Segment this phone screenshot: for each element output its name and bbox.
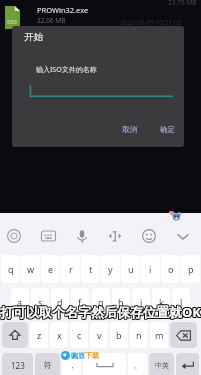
button[interactable]: 确定 — [153, 121, 182, 138]
button[interactable]: i — [141, 255, 160, 283]
button[interactable]: Keyboard layout — [37, 225, 59, 247]
staticText: 确定 — [160, 125, 175, 134]
staticText: exe — [7, 17, 18, 26]
staticText: x — [57, 329, 62, 341]
button[interactable]: p — [181, 255, 200, 283]
button[interactable]: o — [161, 255, 180, 283]
staticText: 符 — [44, 360, 52, 370]
button[interactable]: s — [31, 288, 49, 316]
button[interactable]: ， — [62, 353, 81, 375]
staticText: y — [108, 263, 113, 275]
button[interactable]: m — [150, 322, 168, 348]
staticText: l — [180, 296, 183, 308]
button[interactable]: v — [90, 322, 108, 348]
button[interactable]: k — [152, 288, 170, 316]
staticText: n — [136, 329, 142, 341]
staticText: v — [97, 329, 102, 341]
staticText: u — [128, 263, 134, 275]
staticText: 打可以取个名字然后保存位置就OK了呢 — [1, 302, 201, 320]
button[interactable]: f — [71, 288, 89, 316]
staticText: 中英 — [155, 361, 169, 370]
button[interactable]: Hide keyboard — [172, 225, 194, 247]
staticText: i — [149, 263, 152, 275]
button[interactable]: Move cursor — [104, 225, 126, 247]
button[interactable]: 取消 — [115, 121, 144, 138]
button[interactable]: z — [30, 322, 48, 348]
button[interactable]: e — [41, 255, 60, 283]
staticText: 打可以取个名字然后保存位置就OK了呢 — [0, 303, 201, 321]
staticText: 22.06 MB — [37, 16, 66, 25]
button[interactable]: a — [11, 288, 29, 316]
staticText: 下载 — [85, 351, 99, 360]
button[interactable]: j — [132, 288, 150, 316]
staticText: 打可以取个名字然后保存位置就OK了呢 — [1, 303, 201, 321]
staticText: j — [140, 296, 143, 308]
staticText: d — [57, 296, 63, 308]
staticText: o — [168, 263, 174, 275]
button[interactable]: r — [61, 255, 80, 283]
staticText: 。 — [134, 360, 142, 370]
staticText: 打可以取个名字然后保存位置就OK了呢 — [0, 302, 200, 320]
staticText: 2022-06-09 10:51:02 — [120, 18, 182, 27]
staticText: w — [27, 263, 35, 275]
staticText: b — [116, 329, 122, 341]
staticText: 23.76 MB — [168, 0, 197, 7]
button[interactable]: Backspace — [170, 322, 197, 348]
button[interactable]: h — [112, 288, 130, 316]
button[interactable]: u — [121, 255, 140, 283]
button[interactable]: c — [70, 322, 88, 348]
button[interactable]: Emoji — [138, 225, 160, 247]
button[interactable]: n — [130, 322, 148, 348]
button[interactable]: Shift — [2, 322, 28, 348]
button[interactable]: w — [21, 255, 40, 283]
staticText: q — [8, 263, 14, 275]
staticText: ， — [68, 360, 76, 370]
staticText: e — [48, 263, 54, 275]
staticText: r — [69, 263, 73, 275]
button[interactable]: b — [110, 322, 128, 348]
button[interactable]: 符 — [35, 353, 60, 375]
staticText: p — [188, 263, 194, 275]
staticText: 打可以取个名字然后保存位置就OK了呢 — [0, 304, 200, 322]
button[interactable]: d — [51, 288, 69, 316]
staticText: z — [37, 329, 42, 341]
button[interactable]: 中英 — [149, 353, 174, 375]
staticText: 123 — [11, 360, 25, 371]
staticText: h — [118, 296, 124, 308]
button[interactable]: y — [101, 255, 120, 283]
staticText: 豌豆 — [71, 351, 85, 360]
staticText: 取消 — [122, 125, 137, 134]
staticText: f — [78, 296, 82, 308]
button[interactable]: Translate — [3, 225, 25, 247]
staticText: 打可以取个名字然后保存位置就OK了呢 — [0, 304, 201, 322]
button[interactable]: 123 — [2, 353, 33, 375]
button[interactable]: x — [50, 322, 68, 348]
staticText: PROWin32.exe — [37, 5, 89, 15]
staticText: g — [98, 296, 104, 308]
button[interactable]: q — [1, 255, 20, 283]
staticText: k — [159, 296, 164, 308]
button[interactable]: 。 — [128, 353, 147, 375]
button[interactable]: t — [81, 255, 100, 283]
staticText: s — [38, 296, 43, 308]
staticText: 打可以取个名字然后保存位置就OK了呢 — [0, 303, 200, 321]
button[interactable]: Voice input — [71, 225, 93, 247]
button[interactable]: g — [92, 288, 110, 316]
button[interactable]: Space — [83, 353, 126, 375]
staticText: 输入ISO文件的名称 — [36, 65, 97, 75]
button[interactable]: l — [172, 288, 190, 316]
staticText: c — [77, 329, 82, 341]
staticText: 开始 — [24, 31, 43, 43]
staticText: t — [89, 263, 93, 275]
button[interactable]: Enter — [176, 353, 199, 375]
staticText: 打可以取个名字然后保存位置就OK了呢 — [0, 302, 201, 320]
staticText: m — [155, 329, 164, 341]
staticText: 打可以取个名字然后保存位置就OK了呢 — [1, 304, 201, 322]
staticText: a — [17, 296, 23, 308]
